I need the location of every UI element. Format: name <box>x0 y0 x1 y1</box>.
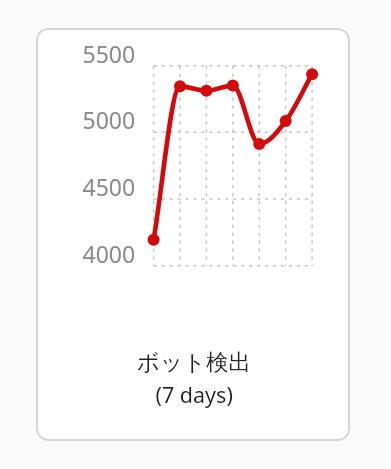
button[interactable]: ボット検出 (7 days) chart <box>36 28 350 441</box>
